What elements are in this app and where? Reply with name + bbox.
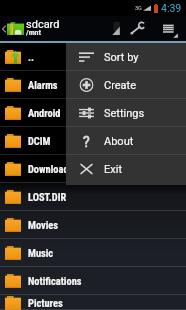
button[interactable]: Settings <box>66 99 186 127</box>
button[interactable]: Create <box>66 71 186 99</box>
button[interactable]: Exit <box>66 155 186 183</box>
staticText: Movies <box>28 219 58 231</box>
button[interactable]: DCIM <box>0 127 186 155</box>
staticText: About <box>104 135 134 148</box>
staticText: Sort by <box>104 51 139 64</box>
staticText: Settings <box>104 107 145 120</box>
staticText: Music <box>28 247 54 259</box>
button[interactable]: Selection mode <box>105 16 127 41</box>
button[interactable]: Up <box>0 16 24 41</box>
staticText: Exit <box>104 163 122 176</box>
button[interactable]: Alarms <box>0 71 186 99</box>
staticText: 4:39 <box>161 2 182 14</box>
staticText: Pictures <box>28 297 63 309</box>
staticText: Notifications <box>28 275 82 287</box>
staticText: /mnt <box>26 28 41 37</box>
staticText: Android <box>28 107 61 119</box>
button[interactable]: Movies <box>0 211 186 239</box>
button[interactable]: Tools <box>126 16 148 41</box>
staticText: 3G <box>135 5 142 11</box>
button[interactable]: Android <box>0 99 186 127</box>
button[interactable]: Download <box>0 155 186 183</box>
staticText: LOST.DIR <box>28 191 67 203</box>
button[interactable]: Notifications <box>0 267 186 295</box>
staticText: Create <box>104 79 137 92</box>
staticText: DCIM <box>28 135 51 147</box>
button[interactable]: Sort by <box>66 43 186 71</box>
button[interactable]: Music <box>0 239 186 267</box>
staticText: Download <box>28 163 69 175</box>
staticText: ? <box>83 134 90 148</box>
button[interactable]: .. <box>0 43 186 71</box>
button[interactable]: LOST.DIR <box>0 183 186 211</box>
staticText: Alarms <box>28 79 58 91</box>
button[interactable]: Pictures <box>0 295 186 310</box>
button[interactable]: View options <box>155 16 179 41</box>
staticText: .. <box>28 51 35 63</box>
staticText: sdcard <box>26 18 60 31</box>
button[interactable]: ? <box>66 127 186 155</box>
